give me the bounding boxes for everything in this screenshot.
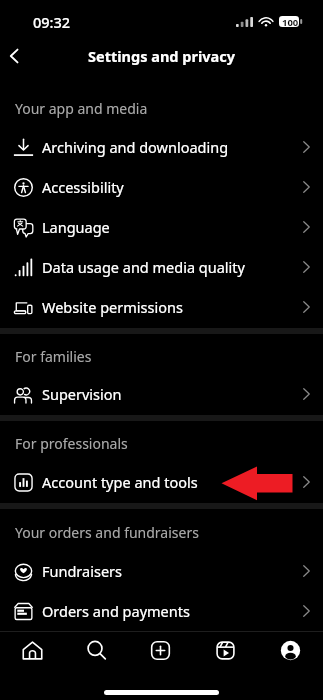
staticText: Accessibility [42, 177, 124, 197]
staticText: 09:32 [33, 12, 71, 32]
button[interactable]: Account type and tools [0, 462, 323, 502]
button[interactable]: Fundraisers [0, 551, 323, 591]
button[interactable]: Orders and payments [0, 591, 323, 631]
button[interactable]: Reels [193, 632, 258, 668]
staticText: For professionals [15, 434, 128, 453]
staticText: Fundraisers [42, 561, 122, 581]
button[interactable]: Website permissions [0, 287, 323, 327]
button[interactable]: Create [128, 632, 193, 668]
staticText: Orders and payments [42, 601, 190, 621]
button[interactable]: Back [0, 38, 36, 74]
button[interactable]: Supervision [0, 374, 323, 414]
staticText: Account type and tools [42, 472, 198, 492]
button[interactable]: Accessibility [0, 167, 323, 207]
staticText: For families [15, 347, 92, 366]
staticText: Your app and media [15, 99, 148, 118]
button[interactable]: Language [0, 207, 323, 247]
staticText: Your orders and fundraisers [15, 523, 199, 542]
staticText: Settings and privacy [88, 46, 235, 66]
button[interactable]: Archiving and downloading [0, 127, 323, 167]
staticText: Website permissions [42, 297, 183, 317]
staticText: Data usage and media quality [42, 257, 245, 277]
staticText: Archiving and downloading [42, 137, 229, 157]
staticText: Language [42, 217, 110, 237]
button[interactable]: Search [64, 632, 128, 668]
staticText: 100 [282, 16, 299, 27]
button[interactable]: Home [0, 632, 64, 668]
button[interactable]: Profile [258, 632, 323, 668]
staticText: Supervision [42, 384, 122, 404]
button[interactable]: Data usage and media quality [0, 247, 323, 287]
